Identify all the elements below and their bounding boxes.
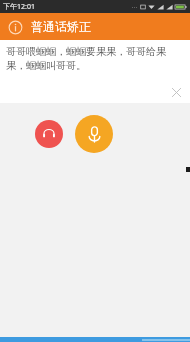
button[interactable]: Play audio [35, 120, 63, 148]
staticText: 哥哥喂蝈蝈，蝈蝈要果果，哥哥给果果，蝈蝈叫哥哥。 [6, 45, 182, 72]
staticText: 普通话矫正 [31, 19, 91, 34]
button[interactable]: Info [7, 19, 23, 35]
staticText: 下午12:01 [3, 2, 35, 12]
button[interactable]: Record [75, 115, 113, 153]
button[interactable]: Close [168, 84, 184, 100]
